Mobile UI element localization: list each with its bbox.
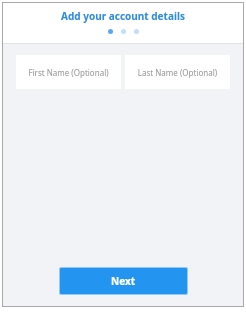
button[interactable]: Next <box>60 268 187 294</box>
button[interactable]: First Name (Optional) <box>16 55 121 89</box>
staticText: First Name (Optional) <box>22 67 115 78</box>
staticText: Last Name (Optional) <box>131 67 224 78</box>
button[interactable]: Last Name (Optional) <box>125 55 230 89</box>
staticText: Add your account details <box>2 9 244 23</box>
staticText: Next <box>111 274 136 288</box>
